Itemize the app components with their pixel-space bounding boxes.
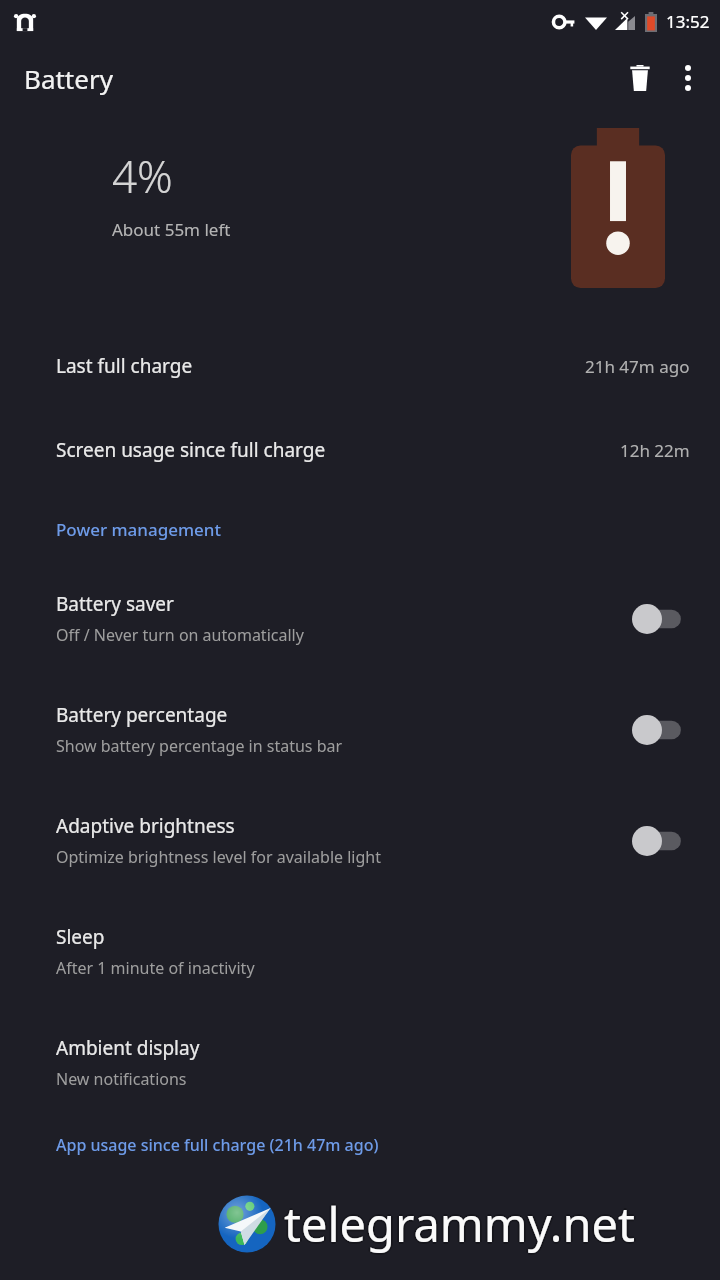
staticText: Last full charge bbox=[56, 353, 585, 379]
staticText: telegrammy.net bbox=[284, 1192, 635, 1256]
staticText: telegrammy.net bbox=[282, 1192, 633, 1256]
staticText: Show battery percentage in status bar bbox=[56, 735, 343, 757]
staticText: Ambient display bbox=[56, 1035, 200, 1061]
staticText: 13:52 bbox=[666, 10, 710, 33]
staticText: Power management bbox=[56, 518, 222, 541]
staticText: Adaptive brightness bbox=[56, 813, 235, 839]
button[interactable]: Battery percentage toggle bbox=[626, 708, 690, 752]
button[interactable]: Battery percentage bbox=[0, 674, 720, 785]
staticText: Screen usage since full charge bbox=[56, 437, 620, 463]
button[interactable]: Sleep bbox=[0, 896, 720, 1007]
staticText: telegrammy.net bbox=[284, 1194, 635, 1258]
staticText: telegrammy.net bbox=[284, 1190, 635, 1254]
staticText: Sleep bbox=[56, 924, 105, 950]
button[interactable]: Ambient display bbox=[0, 1007, 720, 1118]
button[interactable]: Delete battery history bbox=[616, 54, 664, 102]
staticText: About 55m left bbox=[112, 218, 231, 241]
staticText: Battery saver bbox=[56, 591, 174, 617]
staticText: Battery bbox=[24, 61, 113, 96]
staticText: telegrammy.net bbox=[286, 1192, 637, 1256]
button[interactable]: Battery saver toggle bbox=[626, 597, 690, 641]
staticText: Optimize brightness level for available … bbox=[56, 846, 381, 868]
staticText: Battery percentage bbox=[56, 702, 228, 728]
button[interactable]: Last full charge bbox=[0, 324, 720, 408]
staticText: New notifications bbox=[56, 1068, 187, 1090]
staticText: App usage since full charge (21h 47m ago… bbox=[56, 1134, 379, 1156]
staticText: 21h 47m ago bbox=[585, 355, 690, 378]
staticText: 4% bbox=[112, 146, 173, 206]
staticText: After 1 minute of inactivity bbox=[56, 957, 255, 979]
button[interactable]: Screen usage since full charge bbox=[0, 408, 720, 492]
button[interactable]: Adaptive brightness bbox=[0, 785, 720, 896]
button[interactable]: Adaptive brightness toggle bbox=[626, 819, 690, 863]
button[interactable]: App usage since full charge (21h 47m ago… bbox=[0, 1132, 720, 1162]
button[interactable]: Battery saver bbox=[0, 563, 720, 674]
staticText: Off / Never turn on automatically bbox=[56, 624, 304, 646]
button[interactable]: More options bbox=[664, 54, 712, 102]
staticText: 12h 22m bbox=[620, 439, 690, 462]
